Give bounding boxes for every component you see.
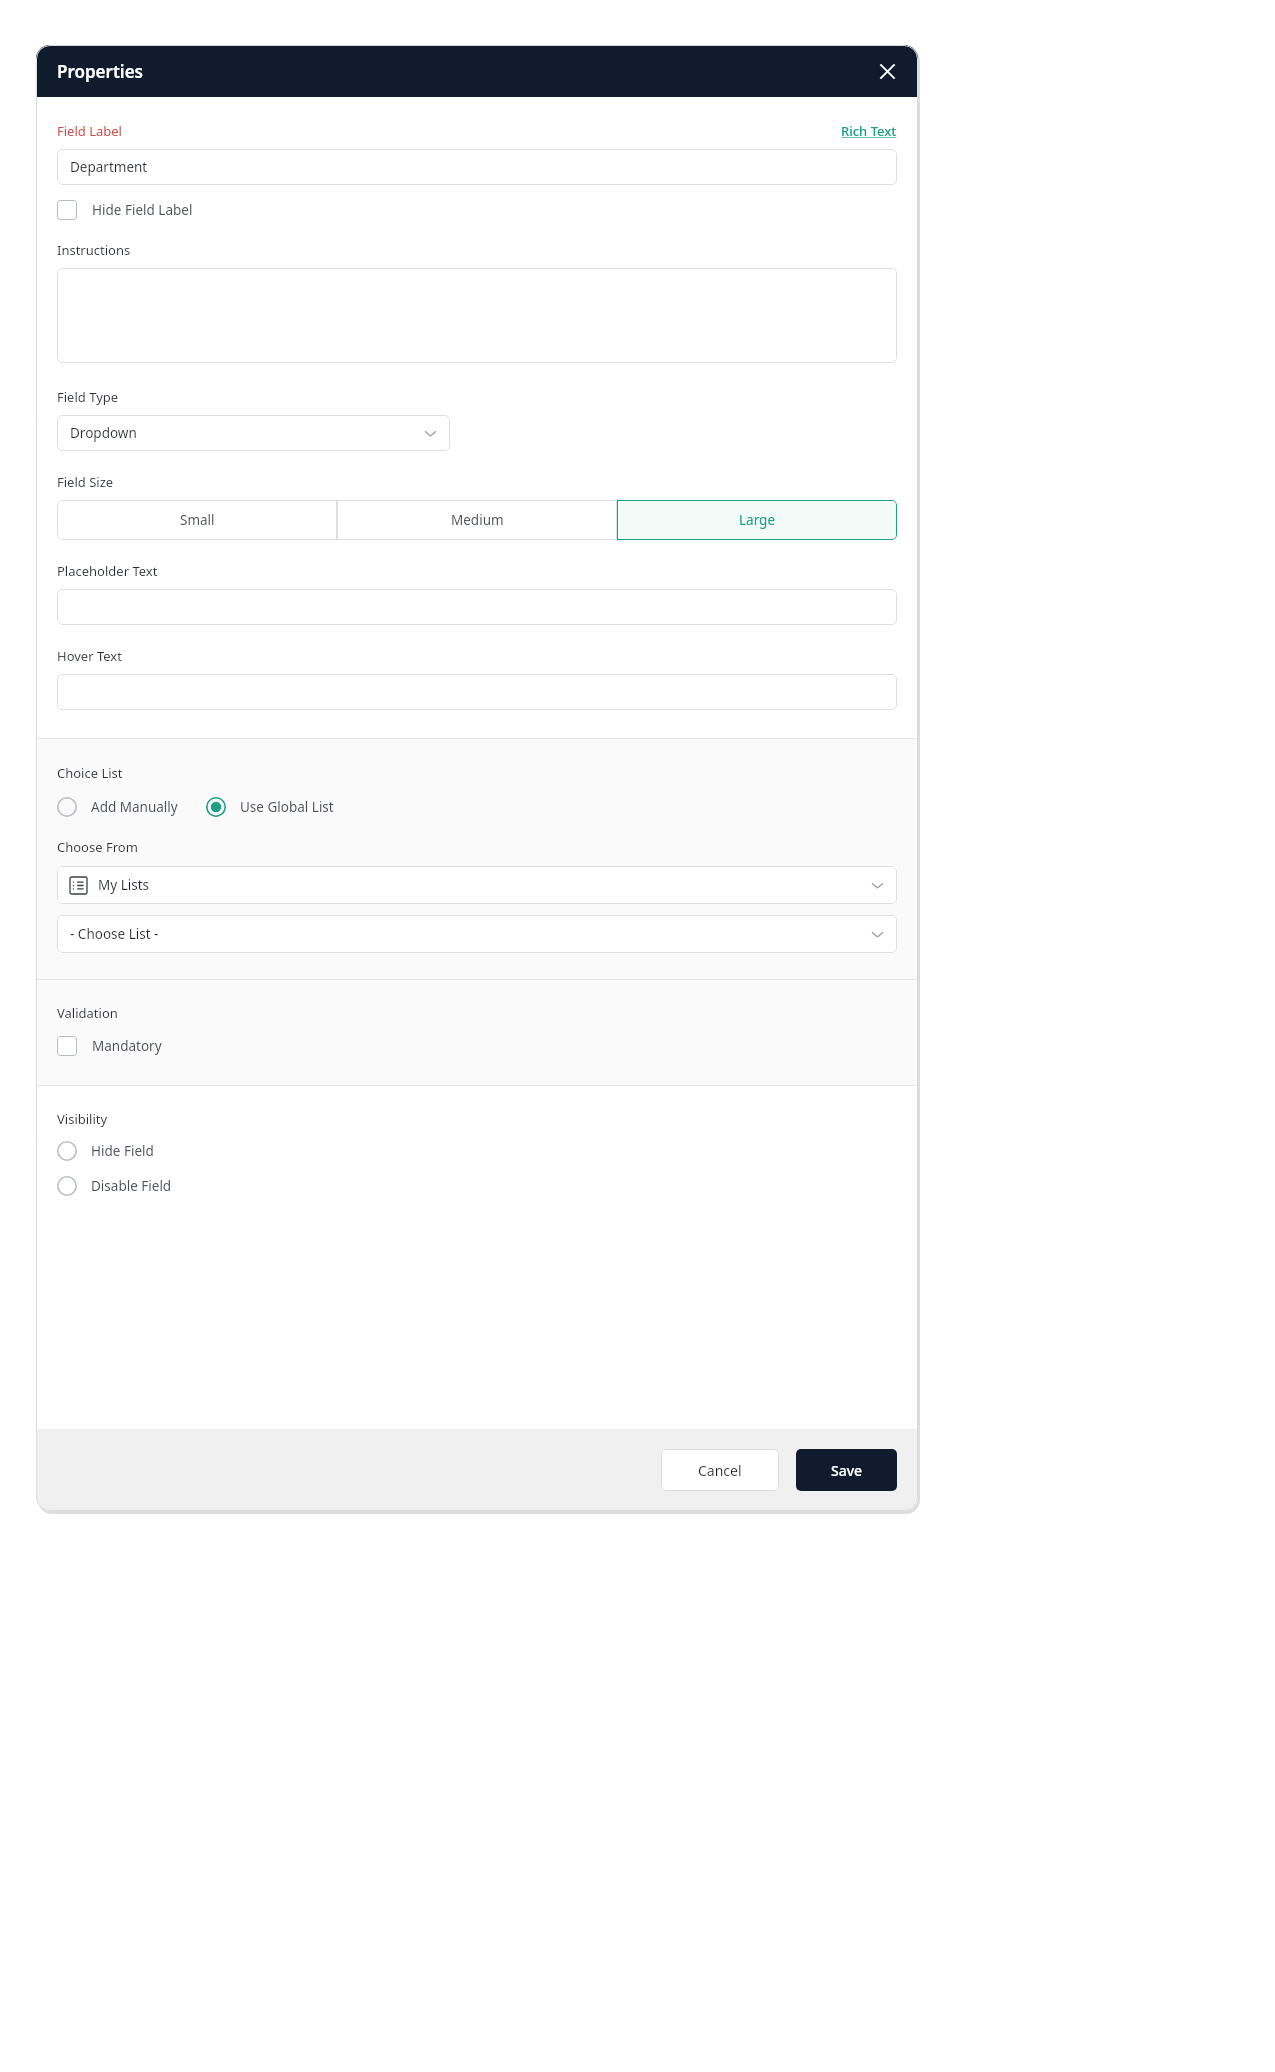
staticText: Hide Field — [91, 1142, 154, 1160]
staticText: Medium — [451, 511, 504, 529]
staticText: Department — [70, 158, 148, 176]
button[interactable]: Rich Text — [841, 122, 897, 140]
button[interactable]: Save — [796, 1449, 897, 1491]
button[interactable]: Hide Field Label — [57, 197, 193, 223]
button[interactable]: Disable Field — [57, 1173, 172, 1199]
staticText: Validation — [57, 1004, 118, 1022]
button[interactable]: - Choose List - — [57, 915, 897, 953]
button[interactable]: Department — [57, 149, 897, 185]
button[interactable]: My Lists — [57, 866, 897, 904]
staticText: Placeholder Text — [57, 562, 158, 580]
staticText: Large — [739, 511, 776, 529]
button[interactable]: Close — [870, 54, 904, 88]
button[interactable]: Use Global List — [206, 794, 334, 820]
staticText: Instructions — [57, 241, 131, 259]
staticText: Visibility — [57, 1110, 108, 1128]
staticText: Properties — [57, 60, 143, 83]
button[interactable]: Large — [617, 500, 897, 540]
staticText: Field Size — [57, 473, 114, 491]
staticText: Choice List — [57, 764, 123, 782]
staticText: Field Label — [57, 122, 122, 140]
button[interactable]: Hide Field — [57, 1138, 154, 1164]
button[interactable]: Mandatory — [57, 1033, 162, 1059]
staticText: Hide Field Label — [92, 201, 193, 219]
staticText: - Choose List - — [70, 925, 159, 943]
staticText: Add Manually — [91, 798, 178, 816]
staticText: Disable Field — [91, 1177, 172, 1195]
staticText: Save — [831, 1461, 863, 1480]
staticText: Hover Text — [57, 647, 122, 665]
button[interactable] — [57, 589, 897, 625]
button[interactable] — [57, 674, 897, 710]
staticText: Cancel — [698, 1461, 742, 1480]
staticText: Dropdown — [70, 424, 137, 442]
staticText: Mandatory — [92, 1037, 162, 1055]
button[interactable]: Add Manually — [57, 794, 178, 820]
button[interactable] — [57, 268, 897, 363]
staticText: Field Type — [57, 388, 119, 406]
staticText: Rich Text — [841, 122, 897, 140]
staticText: Choose From — [57, 838, 138, 856]
staticText: Use Global List — [240, 798, 334, 816]
button[interactable]: Cancel — [661, 1449, 779, 1491]
button[interactable]: Dropdown — [57, 415, 450, 451]
button[interactable]: Medium — [337, 500, 617, 540]
button[interactable]: Small — [57, 500, 337, 540]
staticText: Small — [180, 511, 215, 529]
staticText: My Lists — [98, 876, 150, 894]
